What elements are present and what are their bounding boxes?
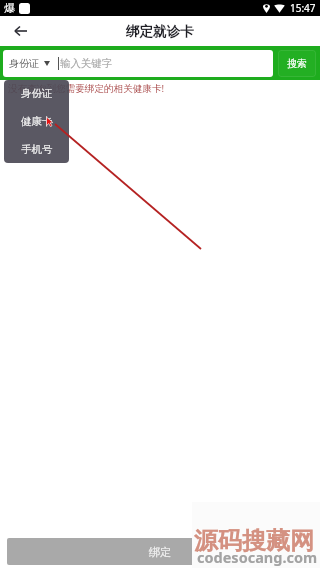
- staticText: 15:47: [290, 1, 316, 15]
- staticText: codesocang.com: [197, 547, 318, 567]
- staticText: 绑定就诊卡: [126, 23, 194, 40]
- staticText: 手机号: [21, 143, 53, 156]
- staticText: 身份证: [21, 87, 53, 100]
- button[interactable]: Back: [7, 18, 33, 44]
- button[interactable]: 手机号: [4, 135, 69, 163]
- staticText: 搜索: [287, 57, 307, 70]
- staticText: 绑定: [149, 545, 171, 559]
- button[interactable]: 身份证: [4, 80, 69, 107]
- button[interactable]: 身份证: [9, 57, 50, 70]
- staticText: 没有查询到您需要绑定的相关健康卡!: [8, 82, 165, 95]
- button[interactable]: 绑定: [7, 538, 313, 565]
- staticText: 健康卡: [21, 115, 53, 128]
- staticText: 身份证: [9, 57, 39, 70]
- staticText: 源码搜藏网: [194, 526, 314, 556]
- button[interactable]: 健康卡: [4, 107, 69, 135]
- staticText: 爆: [4, 1, 15, 15]
- button[interactable]: 搜索: [278, 50, 316, 77]
- staticText: 输入关键字: [60, 57, 113, 70]
